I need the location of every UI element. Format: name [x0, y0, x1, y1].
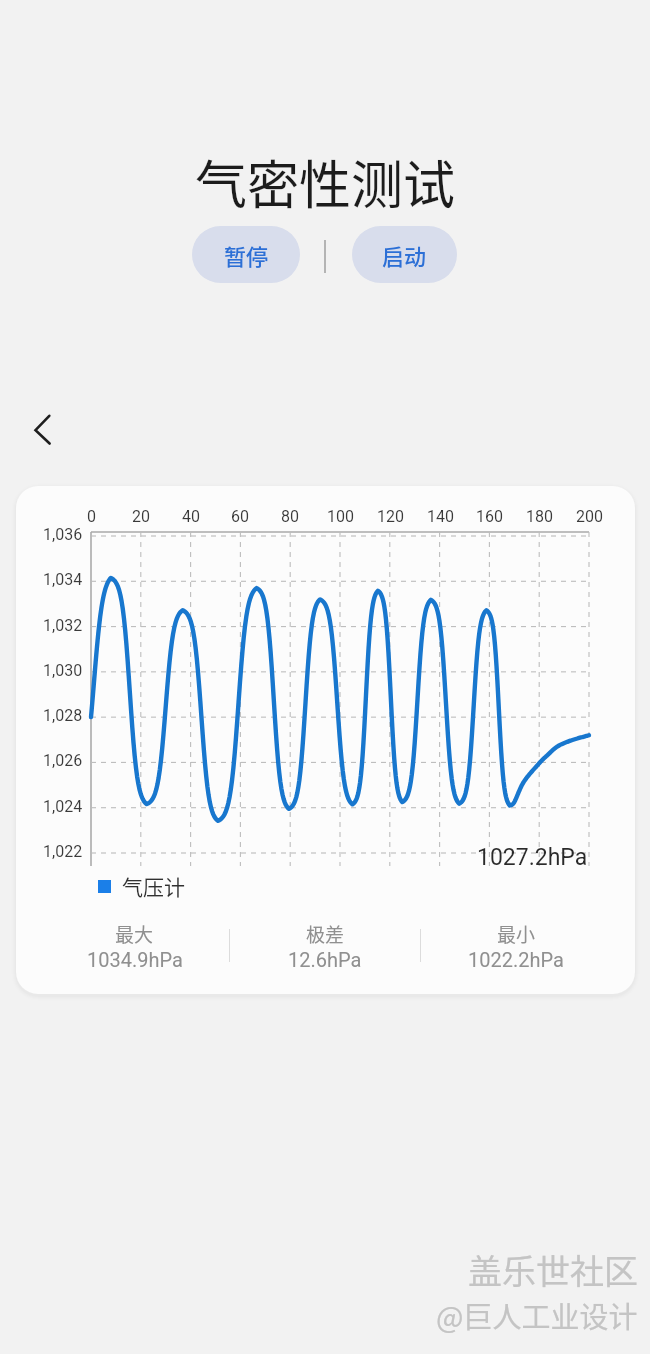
button[interactable]: 暂停	[192, 226, 300, 283]
button[interactable]: Back	[11, 404, 63, 456]
staticText: 1,022	[43, 842, 83, 861]
button[interactable]: 启动	[352, 226, 457, 283]
staticText: 盖乐世社区	[468, 1245, 638, 1294]
staticText: @巨人工业设计	[436, 1294, 638, 1336]
staticText: 60	[231, 507, 249, 526]
staticText: 1,026	[43, 751, 83, 770]
staticText: 1,024	[43, 797, 83, 816]
staticText: 1,030	[43, 661, 83, 680]
staticText: 1034.9hPa	[87, 948, 183, 971]
staticText: 启动	[382, 239, 427, 271]
staticText: 20	[132, 507, 150, 526]
staticText: 1,034	[43, 570, 83, 589]
staticText: 160	[476, 507, 503, 526]
staticText: 1022.2hPa	[468, 948, 564, 971]
staticText: 1,028	[43, 706, 83, 725]
staticText: 180	[526, 507, 553, 526]
staticText: 气密性测试	[0, 144, 650, 219]
staticText: 12.6hPa	[288, 948, 362, 971]
staticText: 暂停	[224, 239, 269, 271]
staticText: 最小	[497, 920, 536, 948]
staticText: 80	[281, 507, 299, 526]
staticText: 极差	[306, 920, 345, 948]
staticText: 40	[182, 507, 200, 526]
staticText: 0	[87, 507, 96, 526]
staticText: 1,036	[43, 525, 83, 544]
staticText: 140	[427, 507, 454, 526]
staticText: 200	[576, 507, 603, 526]
staticText: 1,032	[43, 616, 83, 635]
staticText: 1027.2hPa	[477, 844, 588, 871]
staticText: 最大	[115, 920, 154, 948]
staticText: 气压计	[122, 871, 185, 901]
staticText: 100	[327, 507, 354, 526]
staticText: 120	[377, 507, 404, 526]
